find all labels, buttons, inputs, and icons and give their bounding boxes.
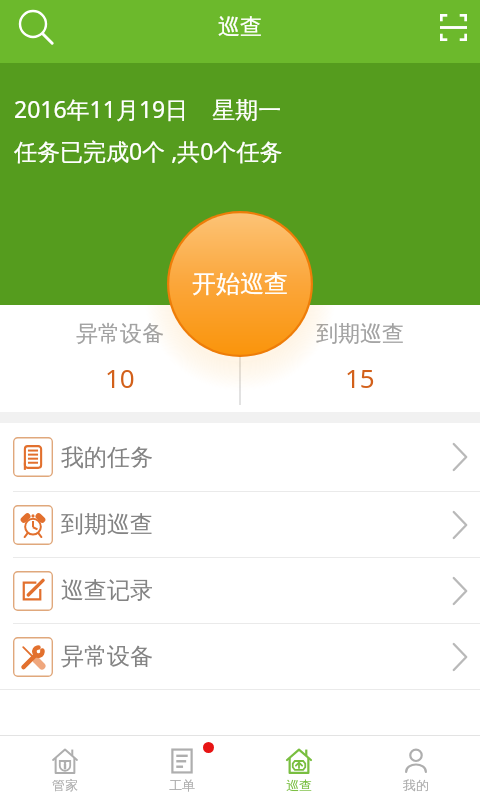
button[interactable]: Search <box>0 0 70 63</box>
button[interactable]: Scan QR code <box>418 0 480 63</box>
staticText: 巡查 <box>286 777 312 793</box>
staticText: 巡查记录 <box>61 576 153 605</box>
staticText: 到期巡查 <box>61 510 153 539</box>
button[interactable]: 异常设备 <box>0 305 240 412</box>
staticText: 管家 <box>52 777 78 793</box>
button[interactable]: 到期巡查 <box>0 492 480 558</box>
staticText: 异常设备 <box>76 320 164 348</box>
button[interactable]: 我的 <box>357 735 474 800</box>
staticText: 我的任务 <box>61 443 153 472</box>
staticText: 2016年11月19日 星期一 <box>14 93 282 124</box>
staticText: 开始巡查 <box>192 269 288 299</box>
staticText: 巡查 <box>218 13 262 41</box>
staticText: 异常设备 <box>61 642 153 671</box>
staticText: 15 <box>345 360 375 395</box>
button[interactable]: 开始巡查 <box>167 211 313 357</box>
button[interactable]: 管家 <box>6 735 123 800</box>
button[interactable]: 工单 <box>123 735 240 800</box>
staticText: 到期巡查 <box>316 320 404 348</box>
button[interactable]: 巡查 <box>240 735 357 800</box>
button[interactable]: 巡查记录 <box>0 558 480 624</box>
staticText: 我的 <box>403 777 429 793</box>
staticText: 任务已完成0个 ,共0个任务 <box>14 135 283 166</box>
button[interactable]: 异常设备 <box>0 624 480 690</box>
button[interactable]: 到期巡查 <box>240 305 480 412</box>
staticText: 10 <box>105 360 135 395</box>
button[interactable]: 我的任务 <box>0 423 480 492</box>
staticText: 工单 <box>169 777 195 793</box>
